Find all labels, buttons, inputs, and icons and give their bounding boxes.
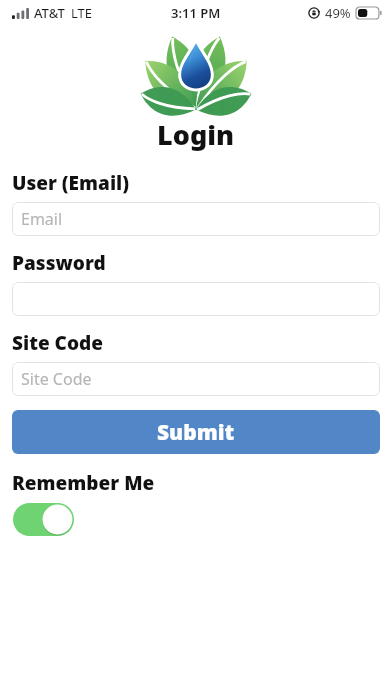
- button[interactable]: Email: [12, 202, 380, 236]
- staticText: Site Code: [21, 368, 92, 390]
- staticText: Password: [12, 250, 106, 276]
- staticText: AT&T: [34, 4, 65, 22]
- staticText: Email: [21, 208, 63, 230]
- button[interactable]: Submit: [12, 410, 380, 454]
- button[interactable]: Remember Me toggle, on: [13, 503, 74, 536]
- button[interactable]: Site Code: [12, 362, 380, 396]
- staticText: User (Email): [12, 170, 130, 196]
- staticText: Login: [157, 116, 235, 153]
- staticText: Submit: [157, 418, 235, 447]
- staticText: Remember Me: [12, 470, 155, 496]
- staticText: 3:11 PM: [171, 4, 221, 22]
- staticText: LTE: [71, 4, 93, 22]
- button[interactable]: [12, 282, 380, 316]
- staticText: Site Code: [12, 330, 103, 356]
- staticText: 49%: [325, 4, 351, 22]
